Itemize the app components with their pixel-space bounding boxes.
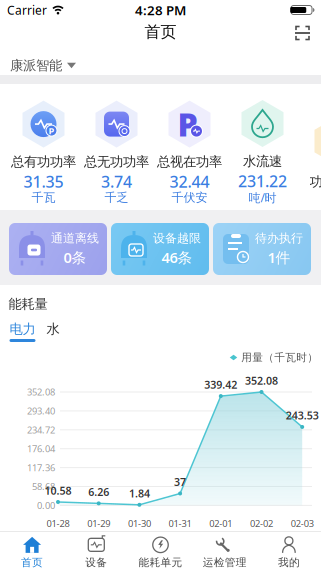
staticText: 234.72 [27,424,55,436]
button[interactable]: 待办执行 [213,223,311,275]
staticText: 千乏 [104,190,128,205]
staticText: P [48,124,54,137]
staticText: 千伏安 [171,190,207,205]
staticText: 117.36 [27,461,55,474]
button[interactable]: 设备越限 [111,223,209,275]
staticText: 31.35 [23,171,63,192]
staticText: 01-31 [169,517,192,530]
staticText: 293.40 [27,405,55,417]
staticText: 02-03 [291,517,314,530]
staticText: 待办执行 [255,231,303,246]
staticText: 1.84 [129,486,150,500]
staticText: 37 [174,475,186,489]
staticText: 32.44 [169,171,209,192]
staticText: 0条 [63,248,86,267]
staticText: 01-30 [128,517,151,530]
staticText: 首页 [21,556,43,569]
staticText: 运检管理 [203,556,247,569]
button[interactable]: 电力 [9,321,35,337]
staticText: 功率因数 [309,174,321,190]
button[interactable]: 设备 [64,532,128,570]
staticText: 10.58 [44,483,71,498]
staticText: 首页 [144,22,176,42]
staticText: 能耗量 [8,296,47,312]
staticText: 总无功功率 [84,154,149,170]
button[interactable]: 扫一扫 [296,28,321,41]
staticText: 352.08 [27,386,55,398]
button[interactable]: 首页 [0,532,64,570]
staticText: 3.74 [101,171,132,192]
staticText: 我的 [278,556,300,569]
staticText: 4:28 PM [135,1,186,19]
staticText: 58.68 [32,480,55,493]
button[interactable]: P [7,85,80,207]
staticText: 01-29 [87,517,110,530]
staticText: 0.00 [37,499,55,512]
staticText: 176.04 [27,442,55,455]
staticText: 能耗单元 [138,556,182,569]
staticText: 吨/时 [248,190,276,205]
staticText: 01-28 [46,517,69,530]
staticText: 总视在功率 [157,154,222,170]
staticText: 康派智能 [10,57,62,74]
staticText: 通道离线 [51,231,99,246]
staticText: 339.42 [204,377,237,392]
staticText: P [177,103,197,145]
staticText: 1件 [267,248,290,267]
button[interactable]: 通道离线 [9,223,107,275]
staticText: 设备越限 [153,231,201,246]
staticText: 02-02 [250,517,273,530]
staticText: 千瓦 [31,190,55,205]
staticText: 水 [46,321,59,337]
staticText: 6.26 [88,485,109,499]
button[interactable]: 能耗单元 [128,532,193,570]
button[interactable]: 康派智能 [0,50,321,75]
button[interactable]: 我的 [257,532,321,570]
staticText: 水流速 [243,153,282,169]
button[interactable]: 运检管理 [193,532,257,570]
staticText: 02-01 [209,517,232,530]
button[interactable]: P [153,85,226,207]
button[interactable]: 水流速 [226,84,299,208]
staticText: 用量（千瓦时） [241,351,318,364]
staticText: Carrier [7,2,47,18]
staticText: 设备 [85,556,107,569]
staticText: 352.08 [245,373,278,388]
staticText: 电力 [9,321,35,337]
staticText: 总有功功率 [11,154,76,170]
button[interactable]: 总无功功率 [80,85,153,207]
staticText: 243.53 [286,408,319,423]
staticText: 231.22 [238,170,287,192]
staticText: 46条 [161,248,192,267]
button[interactable]: 水 [46,321,59,337]
